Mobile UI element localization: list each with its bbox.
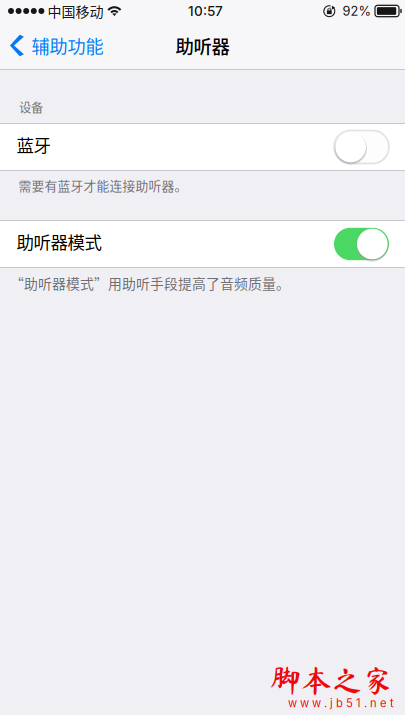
staticText: “助听器模式”用助听手段提高了音频质量。 xyxy=(10,273,290,293)
staticText: 蓝牙 xyxy=(16,132,50,157)
staticText: 92% xyxy=(342,3,371,19)
button[interactable]: 辅助功能 xyxy=(0,23,113,68)
staticText: 中国移动 xyxy=(47,1,103,21)
button[interactable]: 蓝牙 xyxy=(0,124,405,170)
staticText: 设备 xyxy=(19,98,43,116)
staticText: 脚本之家 xyxy=(270,665,394,695)
button[interactable]: 助听器模式 xyxy=(0,221,405,267)
staticText: 助听器 xyxy=(175,32,229,59)
staticText: 需要有蓝牙才能连接助听器。 xyxy=(18,176,187,194)
staticText: 10:57 xyxy=(188,3,223,19)
staticText: w w w . j b 5 1 . n e t xyxy=(288,696,394,710)
staticText: 助听器模式 xyxy=(16,229,101,254)
staticText: 辅助功能 xyxy=(31,32,103,59)
